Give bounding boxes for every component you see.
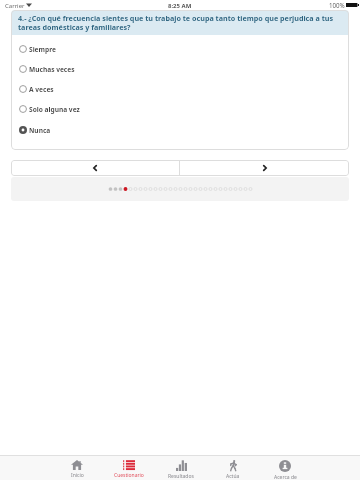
staticText: 100% (329, 1, 345, 9)
button[interactable]: Solo alguna vez (11, 99, 349, 119)
staticText: Acerca de (274, 474, 297, 480)
staticText: Actúa (226, 473, 240, 480)
button[interactable]: Acerca de (259, 456, 311, 480)
staticText: 8:25 AM (168, 2, 192, 10)
staticText: Carrier (5, 2, 25, 10)
button[interactable]: Siempre (11, 39, 349, 59)
button[interactable]: Resultados (155, 456, 207, 480)
button[interactable]: A veces (11, 79, 349, 99)
button[interactable]: Actúa (207, 456, 259, 480)
staticText: Inicio (71, 472, 84, 479)
staticText: Solo alguna vez (29, 105, 80, 114)
button[interactable]: Inicio (51, 456, 103, 480)
button[interactable]: Previous question (11, 160, 179, 176)
staticText: 4.- ¿Con qué frecuencia sientes que tu t… (18, 13, 349, 32)
staticText: Muchas veces (29, 65, 75, 74)
button[interactable]: Next question (180, 160, 349, 176)
staticText: Nunca (29, 126, 51, 135)
staticText: Siempre (29, 45, 56, 54)
button[interactable]: Nunca (11, 120, 349, 140)
button[interactable]: Muchas veces (11, 59, 349, 79)
staticText: Resultados (168, 473, 194, 480)
button[interactable]: Cuestionario (103, 456, 155, 480)
staticText: Cuestionario (114, 472, 144, 479)
staticText: A veces (29, 85, 54, 94)
